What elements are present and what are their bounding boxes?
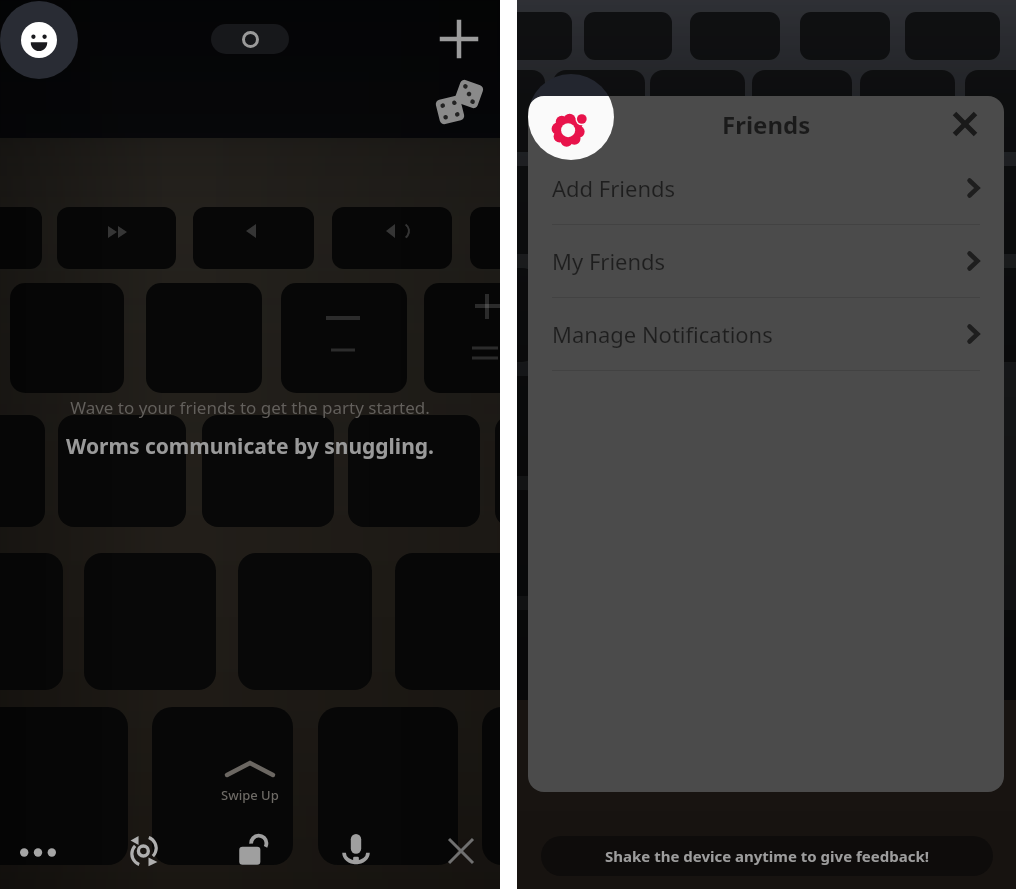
button[interactable]: Shake the device anytime to give feedbac… (541, 836, 993, 876)
button[interactable]: More options (15, 829, 61, 875)
button[interactable]: Profile (0, 1, 78, 79)
staticText: Manage Notifications (552, 319, 773, 349)
staticText: Worms communicate by snuggling. (66, 432, 434, 461)
staticText: Friends (722, 108, 811, 141)
staticText: Wave to your friends to get the party st… (70, 396, 430, 419)
button[interactable]: Close (438, 828, 484, 874)
staticText: Swipe Up (221, 786, 279, 804)
button[interactable]: Flip camera (121, 828, 167, 874)
button[interactable]: Add (436, 16, 482, 62)
button[interactable]: Manage Notifications (528, 298, 1004, 371)
button[interactable]: Close (945, 104, 985, 144)
staticText: Shake the device anytime to give feedbac… (605, 846, 929, 866)
button[interactable]: Random prompt (434, 74, 486, 126)
button[interactable]: My Friends (528, 225, 1004, 298)
staticText: Add Friends (552, 173, 676, 203)
button[interactable]: Houseparty (528, 96, 614, 160)
button[interactable]: Lock room (230, 828, 276, 874)
button[interactable]: Microphone (333, 827, 379, 873)
button[interactable]: Add Friends (528, 152, 1004, 225)
staticText: My Friends (552, 246, 666, 276)
